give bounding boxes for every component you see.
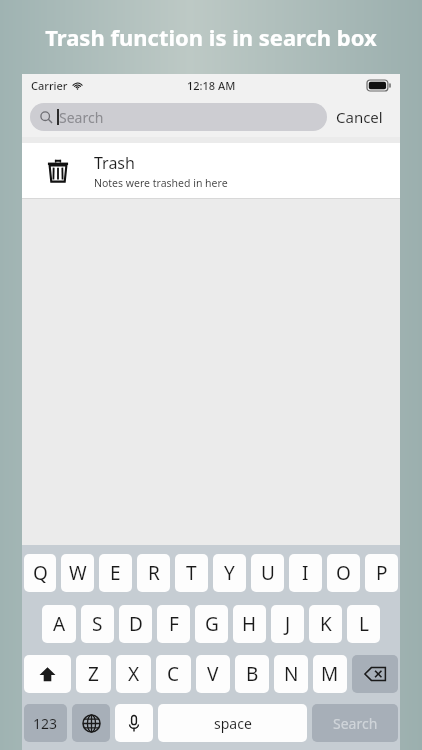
button[interactable]: 123 xyxy=(24,704,67,742)
button[interactable]: L xyxy=(347,605,380,643)
button[interactable]: U xyxy=(251,554,284,592)
staticText: K xyxy=(320,611,332,637)
staticText: Search xyxy=(59,108,104,127)
button[interactable]: Q xyxy=(24,554,56,592)
staticText: M xyxy=(321,661,339,687)
button[interactable]: E xyxy=(99,554,132,592)
staticText: X xyxy=(128,661,140,687)
staticText: V xyxy=(207,661,219,687)
staticText: C xyxy=(167,661,180,687)
staticText: F xyxy=(169,611,179,637)
button[interactable]: Dictation xyxy=(115,704,153,742)
staticText: Notes were trashed in here xyxy=(94,176,228,190)
button[interactable]: K xyxy=(309,605,342,643)
button[interactable]: Search xyxy=(312,704,398,742)
staticText: E xyxy=(110,560,121,586)
staticText: Z xyxy=(88,661,99,687)
button[interactable]: Y xyxy=(213,554,246,592)
button[interactable]: Cancel xyxy=(327,103,392,131)
other: Trash xyxy=(44,157,72,185)
button[interactable]: B xyxy=(235,655,269,693)
staticText: 12:18 AM xyxy=(187,78,236,93)
button[interactable]: V xyxy=(196,655,230,693)
staticText: Trash function is in search box xyxy=(45,22,377,52)
button[interactable]: F xyxy=(157,605,190,643)
staticText: T xyxy=(186,560,197,586)
staticText: Trash xyxy=(94,152,135,174)
button[interactable]: space xyxy=(158,704,307,742)
staticText: Carrier xyxy=(31,78,68,93)
staticText: U xyxy=(261,560,275,586)
button[interactable]: O xyxy=(327,554,360,592)
staticText: space xyxy=(214,714,252,733)
staticText: A xyxy=(53,611,66,637)
button[interactable]: N xyxy=(274,655,308,693)
staticText: D xyxy=(129,611,143,637)
staticText: Cancel xyxy=(336,107,383,127)
button[interactable]: I xyxy=(289,554,322,592)
button[interactable]: G xyxy=(195,605,228,643)
button[interactable]: W xyxy=(61,554,94,592)
button[interactable]: A xyxy=(42,605,76,643)
staticText: 123 xyxy=(33,714,58,733)
button[interactable]: C xyxy=(156,655,191,693)
staticText: Search xyxy=(333,714,378,733)
staticText: P xyxy=(376,560,388,586)
staticText: Y xyxy=(224,560,235,586)
button[interactable]: Change keyboard language xyxy=(72,704,110,742)
button[interactable]: J xyxy=(271,605,304,643)
button[interactable]: R xyxy=(137,554,170,592)
staticText: Q xyxy=(33,560,48,586)
button[interactable]: S xyxy=(81,605,114,643)
staticText: B xyxy=(246,661,259,687)
staticText: S xyxy=(92,611,103,637)
staticText: N xyxy=(284,661,299,687)
button[interactable]: M xyxy=(313,655,347,693)
button[interactable]: H xyxy=(233,605,266,643)
staticText: W xyxy=(69,560,87,586)
staticText: J xyxy=(285,611,291,637)
button[interactable]: Trash xyxy=(22,143,400,198)
button[interactable]: Search xyxy=(30,103,327,131)
button[interactable]: X xyxy=(116,655,151,693)
button[interactable]: T xyxy=(175,554,208,592)
staticText: H xyxy=(242,611,257,637)
staticText: R xyxy=(148,560,160,586)
button[interactable]: Shift xyxy=(24,655,71,693)
button[interactable]: Backspace xyxy=(352,655,398,693)
button[interactable]: D xyxy=(119,605,152,643)
button[interactable]: Z xyxy=(76,655,111,693)
staticText: I xyxy=(302,560,309,586)
button[interactable]: P xyxy=(365,554,398,592)
staticText: L xyxy=(359,611,369,637)
staticText: G xyxy=(205,611,219,637)
staticText: O xyxy=(336,560,351,586)
